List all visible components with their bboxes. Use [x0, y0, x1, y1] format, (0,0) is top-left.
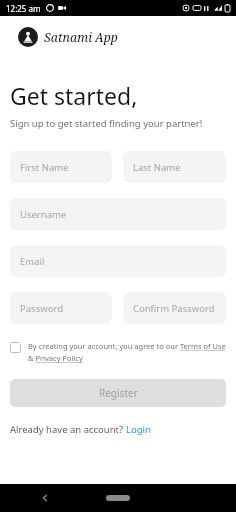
staticText: Satnami App [44, 29, 118, 45]
staticText: Get started, [10, 80, 138, 111]
button[interactable]: Email [10, 245, 226, 277]
button[interactable]: Accept terms checkbox [10, 342, 21, 353]
staticText: Sign up to get started finding your part… [10, 117, 203, 130]
staticText: Register [99, 386, 138, 400]
staticText: Login [126, 423, 151, 436]
button[interactable]: First Name [10, 151, 112, 183]
button[interactable]: Confirm Password [123, 292, 226, 324]
staticText: Email [20, 255, 45, 268]
button[interactable]: Login [126, 423, 151, 436]
staticText: 12:25 am [6, 3, 41, 14]
button[interactable]: Back [36, 489, 54, 507]
button[interactable]: Username [10, 198, 226, 230]
button[interactable]: Home [102, 491, 134, 505]
button[interactable]: Last Name [123, 151, 226, 183]
button[interactable]: Password [10, 292, 112, 324]
staticText: Last Name [133, 161, 181, 174]
staticText: Confirm Password [133, 302, 215, 315]
button[interactable]: Register [10, 379, 226, 407]
staticText: First Name [20, 161, 69, 174]
staticText: Already have an account? [10, 423, 126, 436]
staticText: Username [20, 208, 67, 221]
staticText: By creating your account, you agree to o… [28, 341, 226, 364]
staticText: Password [20, 302, 63, 315]
